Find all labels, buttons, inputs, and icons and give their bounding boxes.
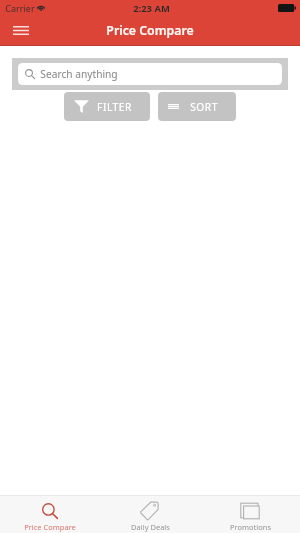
staticText: 2:23 AM — [133, 2, 170, 15]
button[interactable]: Promotions — [200, 495, 300, 533]
staticText: FILTER — [97, 100, 132, 114]
button[interactable]: Daily Deals — [100, 495, 200, 533]
button[interactable]: FILTER — [64, 92, 150, 121]
staticText: Price Compare — [106, 22, 194, 39]
button[interactable]: Search anything — [18, 63, 282, 85]
staticText: Daily Deals — [131, 522, 170, 532]
button[interactable]: Menu — [6, 16, 36, 45]
staticText: Carrier — [5, 2, 35, 14]
staticText: Promotions — [230, 522, 271, 532]
button[interactable]: Price Compare — [0, 495, 100, 533]
button[interactable]: SORT — [158, 92, 236, 121]
staticText: SORT — [190, 100, 218, 114]
staticText: Search anything — [40, 67, 118, 81]
staticText: Price Compare — [24, 522, 76, 532]
